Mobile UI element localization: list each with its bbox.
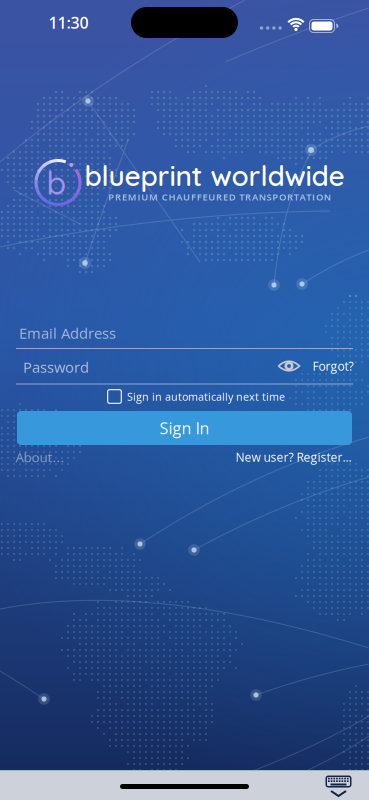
button[interactable]: Dismiss keyboard bbox=[323, 774, 353, 798]
staticText: Sign in automatically next time bbox=[127, 389, 285, 404]
staticText: New user? Register... bbox=[235, 449, 351, 465]
button[interactable]: Forgot? bbox=[301, 356, 365, 376]
staticText: Password bbox=[23, 357, 89, 377]
button[interactable]: Sign In bbox=[17, 411, 352, 445]
staticText: Email Address bbox=[19, 323, 116, 343]
staticText: PREMIUM CHAUFFEURED TRANSPORTATION bbox=[108, 191, 331, 203]
button[interactable]: Password bbox=[16, 350, 353, 385]
staticText: blueprint worldwide bbox=[84, 158, 344, 193]
staticText: Forgot? bbox=[312, 358, 353, 374]
button[interactable]: About... bbox=[15, 447, 64, 467]
staticText: About... bbox=[15, 448, 64, 466]
button[interactable]: New user? Register... bbox=[235, 447, 351, 467]
staticText: Sign In bbox=[159, 417, 209, 439]
staticText: 11:30 bbox=[48, 12, 88, 33]
button[interactable]: Email Address bbox=[16, 315, 353, 350]
button[interactable]: Sign in automatically next time bbox=[107, 387, 285, 405]
staticText: b bbox=[46, 162, 66, 202]
button[interactable]: Show password bbox=[274, 355, 304, 377]
